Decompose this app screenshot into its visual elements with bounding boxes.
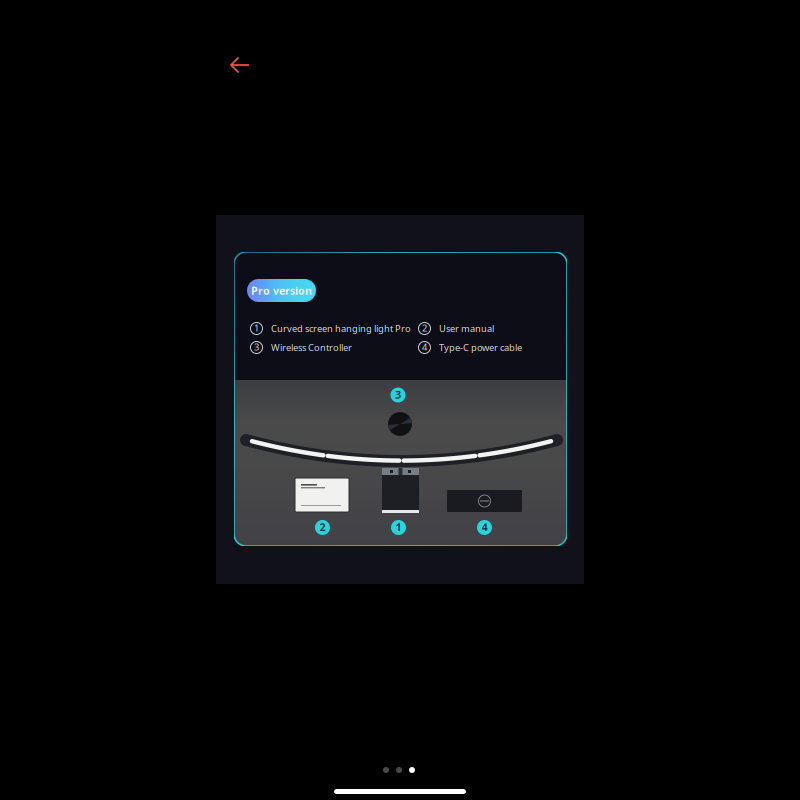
staticText: 3 xyxy=(254,341,259,353)
staticText: 4 xyxy=(481,520,487,534)
staticText: 2 xyxy=(319,520,325,534)
staticText: User manual xyxy=(439,322,494,335)
staticText: Wireless Controller xyxy=(271,341,352,354)
staticText: Pro version xyxy=(251,283,312,298)
staticText: Curved screen hanging light Pro xyxy=(271,322,411,335)
staticText: 1 xyxy=(254,322,259,334)
staticText: 1 xyxy=(395,520,401,534)
staticText: 4 xyxy=(422,341,427,353)
staticText: Type-C power cable xyxy=(439,341,522,354)
button[interactable]: Back xyxy=(218,43,262,87)
staticText: 2 xyxy=(422,322,427,334)
staticText: 3 xyxy=(395,387,401,402)
